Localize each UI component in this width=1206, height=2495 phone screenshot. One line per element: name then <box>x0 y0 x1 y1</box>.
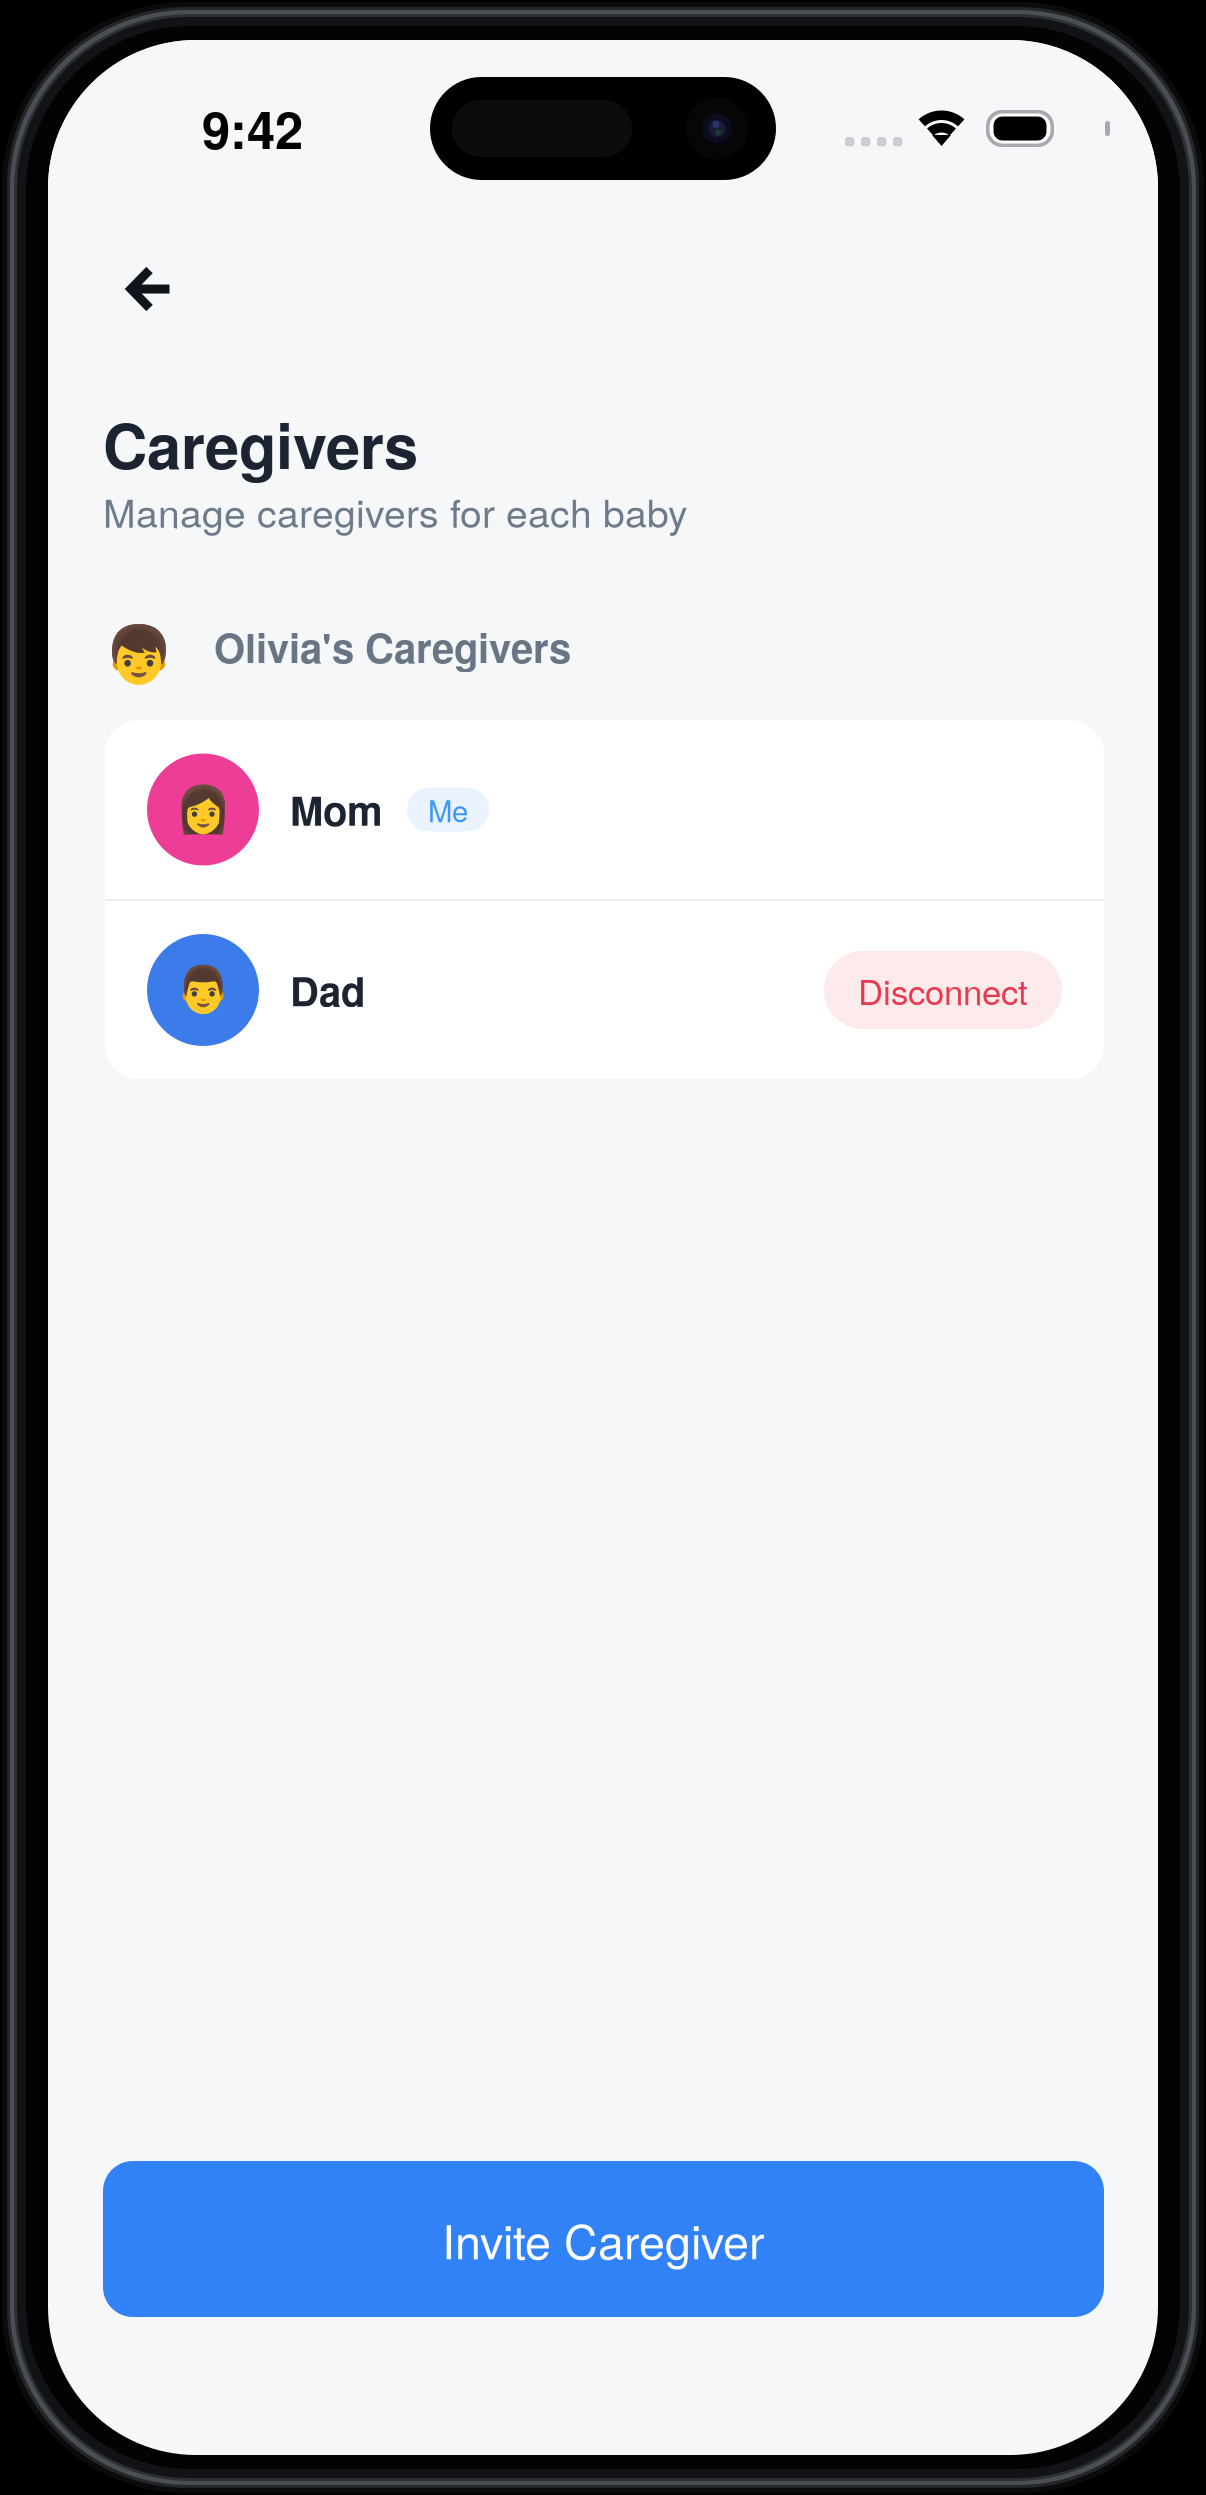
staticText: 👦 <box>104 622 174 688</box>
staticText: Caregivers <box>103 400 418 488</box>
staticText: Olivia's Caregivers <box>214 618 571 675</box>
staticText: Dad <box>290 961 365 1019</box>
staticText: Me <box>428 788 468 830</box>
staticText: Mom <box>290 781 383 838</box>
staticText: 👨 <box>175 963 231 1016</box>
button[interactable]: Back <box>100 239 200 339</box>
staticText: Invite Caregiver <box>442 2206 765 2272</box>
staticText: Manage caregivers for each baby <box>103 483 688 539</box>
button[interactable]: Invite Caregiver <box>103 2161 1104 2317</box>
staticText: 9:42 <box>202 92 303 165</box>
staticText: Disconnect <box>858 965 1028 1015</box>
button[interactable]: Disconnect <box>824 951 1062 1029</box>
staticText: 👩 <box>175 783 231 836</box>
